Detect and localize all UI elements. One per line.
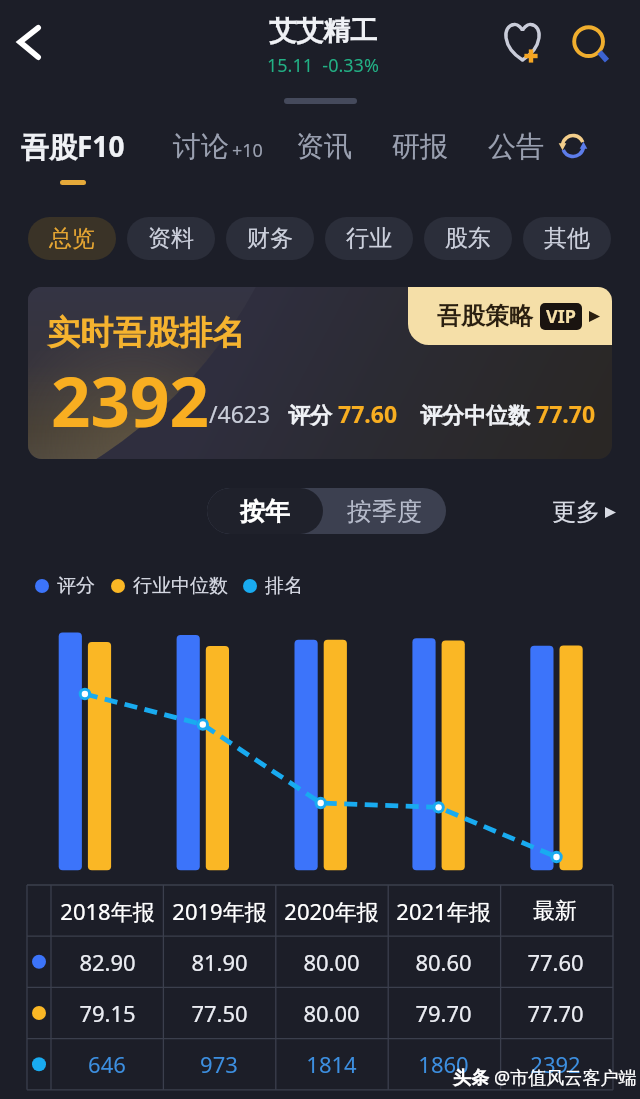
staticText: 80.00	[303, 998, 360, 1028]
staticText: 2018年报	[60, 896, 155, 926]
button[interactable]: 研报	[392, 118, 448, 174]
staticText: 79.15	[79, 998, 136, 1028]
staticText: 吾股策略	[437, 301, 533, 331]
staticText: 艾艾精工	[269, 14, 377, 48]
staticText: 2020年报	[284, 896, 379, 926]
staticText: 其他	[544, 224, 590, 253]
staticText: 按季度	[347, 496, 422, 527]
staticText: 77.70	[536, 398, 596, 429]
button[interactable]: 资讯	[296, 118, 352, 174]
staticText: 头条	[453, 1065, 494, 1090]
button[interactable]: 按年	[207, 488, 323, 534]
button[interactable]: 股东	[424, 217, 512, 260]
staticText: 讨论	[173, 129, 229, 164]
staticText: 资料	[148, 224, 194, 253]
staticText: 80.00	[303, 947, 360, 977]
staticText: 79.70	[415, 998, 472, 1028]
button[interactable]: Back	[6, 19, 52, 65]
button[interactable]: Add to favorites	[500, 20, 544, 64]
staticText: 评分	[288, 399, 338, 429]
button[interactable]: Refresh	[554, 127, 592, 165]
button[interactable]: 行业	[325, 217, 413, 260]
staticText: @市值风云客户端	[494, 1065, 637, 1090]
staticText: 80.60	[415, 947, 472, 977]
staticText: 2392	[530, 1049, 581, 1079]
staticText: 实时吾股排名	[47, 312, 245, 354]
staticText: 行业	[346, 224, 392, 253]
button[interactable]: 总览	[28, 217, 116, 260]
staticText: 总览	[49, 224, 95, 253]
staticText: /4623	[209, 398, 271, 429]
staticText: 15.11 -0.33%	[267, 53, 379, 78]
staticText: 股东	[445, 224, 491, 253]
staticText: 1860	[418, 1049, 469, 1079]
staticText: 77.60	[527, 947, 584, 977]
staticText: 行业中位数	[133, 574, 228, 598]
button[interactable]: 其他	[523, 217, 611, 260]
staticText: 77.70	[527, 998, 584, 1028]
staticText: 财务	[247, 224, 293, 253]
staticText: 评分中位数	[420, 399, 536, 429]
staticText: 2019年报	[172, 896, 267, 926]
staticText: 82.90	[79, 947, 136, 977]
staticText: 973	[200, 1049, 238, 1079]
staticText: 资讯	[296, 129, 352, 164]
staticText: 按年	[240, 496, 290, 527]
staticText: 1814	[306, 1049, 357, 1079]
button[interactable]: Search	[570, 20, 614, 64]
staticText: 公告	[488, 129, 544, 164]
staticText: 77.50	[191, 998, 248, 1028]
button[interactable]: 财务	[226, 217, 314, 260]
staticText: 吾股F10	[21, 127, 125, 165]
button[interactable]: 按季度	[323, 488, 446, 534]
staticText: 研报	[392, 129, 448, 164]
button[interactable]: 吾股F10	[21, 118, 125, 174]
staticText: 2392	[51, 353, 209, 447]
staticText: VIP	[546, 304, 576, 329]
button[interactable]: 更多	[552, 497, 616, 527]
staticText: 2021年报	[396, 896, 491, 926]
button[interactable]: 吾股策略	[28, 287, 612, 459]
button[interactable]: 资料	[127, 217, 215, 260]
staticText: 排名	[265, 574, 303, 598]
staticText: +10	[232, 138, 263, 163]
staticText: 最新	[533, 897, 577, 925]
staticText: 81.90	[191, 947, 248, 977]
button[interactable]: 公告	[488, 118, 544, 174]
staticText: 更多	[552, 497, 600, 527]
staticText: 646	[88, 1049, 126, 1079]
staticText: 评分	[57, 574, 95, 598]
staticText: 77.60	[338, 398, 398, 429]
button[interactable]: 讨论	[173, 118, 260, 174]
